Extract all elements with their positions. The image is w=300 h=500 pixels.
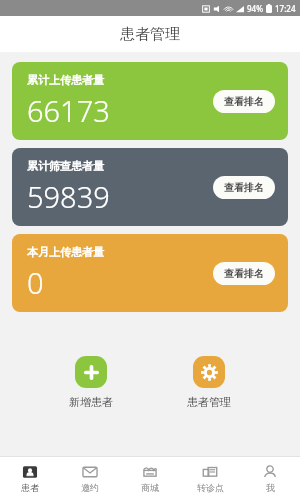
button[interactable]: 查看排名 [213, 176, 275, 199]
staticText: 患者管理 [187, 395, 231, 409]
button[interactable]: 转诊点 [180, 461, 240, 496]
staticText: 新增患者 [69, 395, 113, 409]
staticText: 0 [27, 263, 44, 302]
staticText: 查看排名 [224, 181, 264, 194]
button[interactable]: 我 [240, 461, 300, 496]
button[interactable]: 商城 [120, 461, 180, 496]
staticText: 患者管理 [120, 25, 180, 44]
button[interactable]: 邀约 [60, 461, 120, 496]
staticText: 我 [266, 482, 275, 493]
button[interactable]: 累计上传患者量 [12, 62, 288, 140]
button[interactable]: 查看排名 [213, 262, 275, 285]
staticText: 邀约 [81, 482, 99, 493]
staticText: 商城 [141, 482, 159, 493]
staticText: 累计筛查患者量 [27, 159, 104, 173]
button[interactable]: 查看排名 [213, 90, 275, 113]
button[interactable]: 患者 [0, 461, 60, 496]
staticText: 转诊点 [197, 482, 224, 493]
staticText: 查看排名 [224, 95, 264, 108]
staticText: 患者 [21, 482, 39, 493]
staticText: 累计上传患者量 [27, 73, 104, 87]
staticText: 59839 [27, 177, 110, 216]
button[interactable]: New patient [65, 352, 117, 413]
staticText: 17:24 [275, 3, 296, 14]
staticText: 查看排名 [224, 267, 264, 280]
button[interactable]: 累计筛查患者量 [12, 148, 288, 226]
button[interactable]: 本月上传患者量 [12, 234, 288, 312]
staticText: 94% [247, 3, 263, 14]
staticText: 本月上传患者量 [27, 245, 104, 259]
button[interactable]: Patient management [183, 352, 235, 413]
staticText: 66173 [27, 91, 110, 130]
